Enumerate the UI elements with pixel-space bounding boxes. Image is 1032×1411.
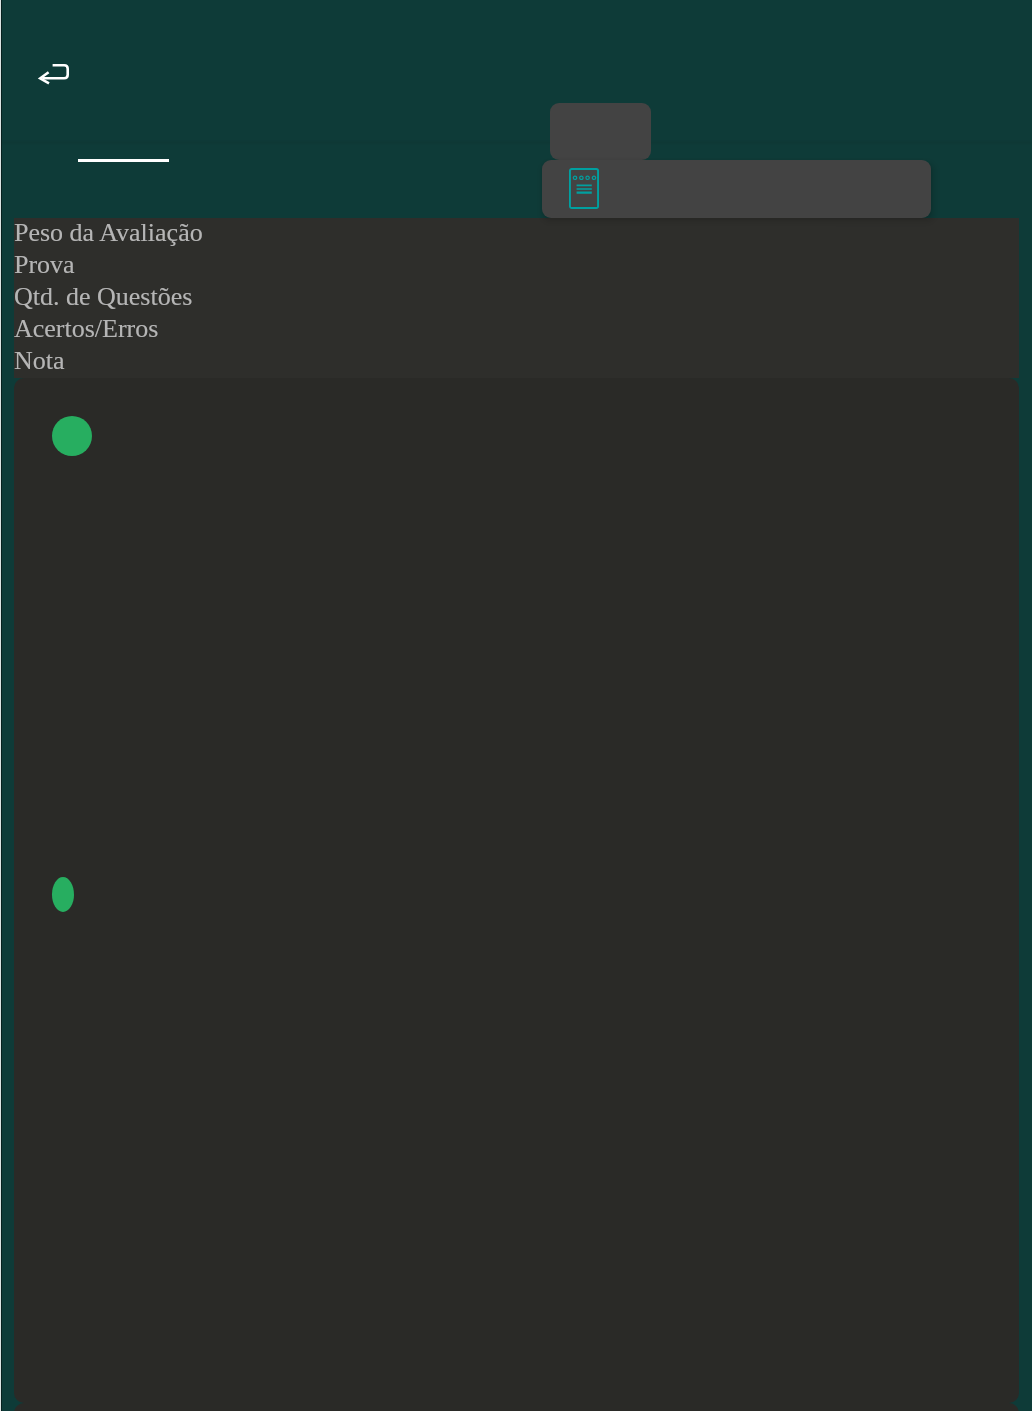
staticText: Qtd. de Questões (14, 282, 193, 311)
staticText: Nota (14, 346, 65, 375)
staticText: Prova (14, 250, 75, 279)
staticText: Acertos/Erros (14, 314, 159, 343)
button[interactable]: Menu (542, 160, 931, 218)
staticText: Peso da Avaliação (14, 218, 203, 247)
button[interactable] (14, 378, 1019, 1403)
button[interactable]: Menu (550, 103, 651, 160)
button[interactable]: Back (33, 55, 73, 95)
